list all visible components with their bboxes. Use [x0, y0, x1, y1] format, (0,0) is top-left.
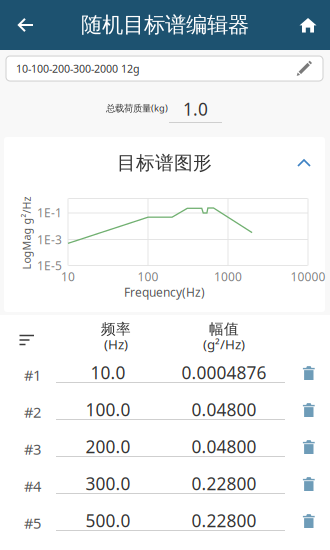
button[interactable]: Edit	[289, 56, 319, 81]
staticText: 0.0004876	[181, 361, 266, 384]
staticText: 0.04800	[191, 398, 256, 421]
button[interactable]: Home	[285, 0, 330, 50]
staticText: 1E-5	[37, 257, 62, 273]
staticText: 1E-3	[37, 231, 62, 247]
staticText: #5	[24, 513, 41, 533]
staticText: 10	[61, 268, 75, 284]
staticText: #3	[24, 439, 41, 459]
staticText: 100	[137, 268, 158, 284]
staticText: 频率	[101, 320, 131, 338]
staticText: 0.04800	[191, 435, 256, 458]
staticText: 100.0	[85, 398, 130, 421]
staticText: #2	[24, 402, 41, 422]
button[interactable]: Back	[0, 0, 52, 50]
button[interactable]: Sort	[7, 320, 47, 360]
staticText: 10.0	[90, 361, 125, 384]
button[interactable]: #2	[0, 394, 330, 431]
button[interactable]: #3	[0, 431, 330, 468]
button[interactable]: #4	[0, 468, 330, 505]
button[interactable]: #5	[0, 505, 330, 542]
staticText: #1	[24, 365, 41, 385]
staticText: 10000	[290, 268, 325, 284]
staticText: #4	[24, 476, 41, 496]
staticText: LogMag g²/Hz	[0, 226, 63, 240]
staticText: 随机目标谱编辑器	[81, 12, 249, 38]
staticText: 总载荷质量(kg)	[106, 102, 168, 114]
staticText: 10-100-200-300-2000 12g	[16, 61, 140, 76]
staticText: 0.22800	[191, 509, 256, 532]
button[interactable]: #1	[0, 357, 330, 394]
staticText: 300.0	[85, 472, 130, 495]
staticText: 1.0	[183, 97, 208, 120]
staticText: 目标谱图形	[117, 151, 212, 174]
staticText: (Hz)	[104, 335, 128, 353]
staticText: 500.0	[85, 509, 130, 532]
button[interactable]: Collapse chart	[287, 150, 321, 176]
staticText: 1E-1	[37, 204, 62, 220]
staticText: 0.22800	[191, 472, 256, 495]
staticText: Frequency(Hz)	[124, 284, 205, 300]
staticText: 幅值	[209, 320, 239, 338]
staticText: 200.0	[85, 435, 130, 458]
staticText: (g²/Hz)	[203, 335, 245, 353]
staticText: 1000	[214, 268, 242, 284]
